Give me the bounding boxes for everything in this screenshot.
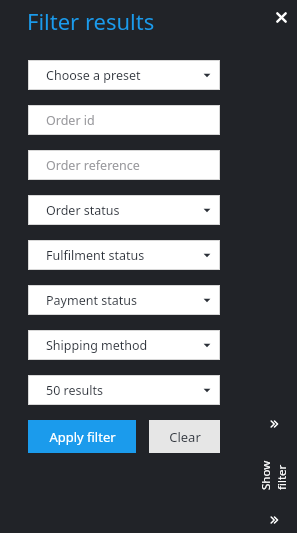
staticText: Filter results bbox=[27, 6, 155, 36]
button[interactable]: 50 results bbox=[28, 375, 220, 405]
button[interactable]: Clear bbox=[149, 420, 220, 453]
staticText: Clear bbox=[169, 428, 201, 446]
button[interactable]: Close bbox=[271, 7, 292, 28]
button[interactable]: Payment status bbox=[28, 285, 220, 315]
button[interactable]: Fulfilment status bbox=[28, 240, 220, 270]
button[interactable]: Apply filter bbox=[28, 420, 136, 453]
staticText: Fulfilment status bbox=[46, 247, 145, 264]
staticText: Show filter bbox=[258, 458, 290, 490]
staticText: 50 results bbox=[46, 382, 103, 399]
button[interactable]: Order reference bbox=[28, 150, 220, 180]
button[interactable]: Shipping method bbox=[28, 330, 220, 360]
staticText: Choose a preset bbox=[46, 67, 141, 84]
staticText: Order status bbox=[46, 202, 120, 219]
staticText: Shipping method bbox=[46, 337, 148, 354]
button[interactable]: Choose a preset bbox=[28, 60, 220, 90]
button[interactable]: Show filter bbox=[258, 413, 290, 533]
staticText: Apply filter bbox=[49, 428, 116, 446]
staticText: Order id bbox=[46, 112, 95, 129]
staticText: Order reference bbox=[46, 157, 140, 174]
button[interactable]: Order id bbox=[28, 105, 220, 135]
staticText: Payment status bbox=[46, 292, 137, 309]
button[interactable]: Order status bbox=[28, 195, 220, 225]
